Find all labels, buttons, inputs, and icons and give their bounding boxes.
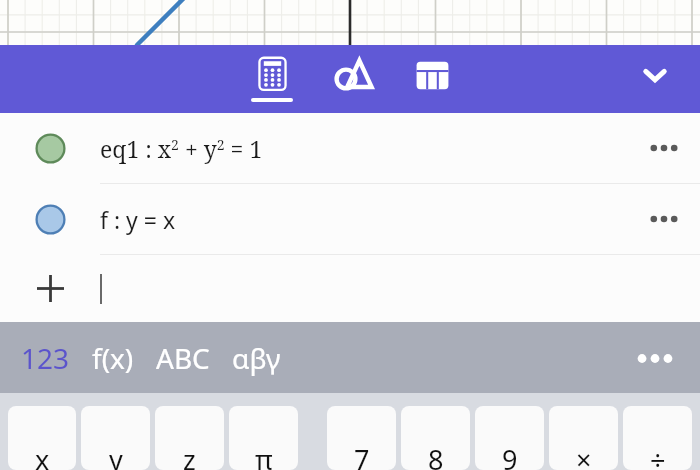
staticText: ABC xyxy=(156,339,210,377)
button[interactable]: Calculator xyxy=(233,45,311,113)
button[interactable]: 7 xyxy=(327,406,396,470)
staticText: 8 xyxy=(428,441,444,470)
button[interactable]: π xyxy=(229,406,298,470)
button[interactable]: Table xyxy=(397,45,467,113)
staticText: 9 xyxy=(502,441,518,470)
staticText: z xyxy=(183,441,196,470)
button[interactable]: ÷ xyxy=(623,406,692,470)
button[interactable]: eq1 : x2 + y2 = 1 xyxy=(0,113,700,183)
button[interactable]: × xyxy=(549,406,618,470)
button[interactable]: z xyxy=(155,406,224,470)
button[interactable]: x xyxy=(8,406,76,470)
button[interactable]: 8 xyxy=(401,406,470,470)
button[interactable]: 9 xyxy=(475,406,544,470)
staticText: × xyxy=(576,441,592,470)
button[interactable] xyxy=(0,255,700,322)
button[interactable]: More options xyxy=(628,184,700,254)
button[interactable]: ABC xyxy=(145,322,221,393)
staticText: ÷ xyxy=(650,441,666,470)
button[interactable]: Geometry xyxy=(319,45,389,113)
staticText: π xyxy=(255,441,273,470)
staticText: f(x) xyxy=(92,339,134,377)
staticText: 7 xyxy=(354,441,370,470)
button[interactable]: f(x) xyxy=(81,322,145,393)
button[interactable]: f : y = x xyxy=(0,184,700,254)
button[interactable]: More keyboard options xyxy=(628,331,682,385)
button[interactable]: 123 xyxy=(10,322,81,393)
staticText: 123 xyxy=(21,339,70,377)
button[interactable]: y xyxy=(81,406,150,470)
staticText: eq1 : x2 + y2 = 1 xyxy=(100,133,263,164)
button[interactable]: Collapse panel xyxy=(630,50,680,100)
staticText: f : y = x xyxy=(100,204,176,235)
staticText: y xyxy=(109,441,123,470)
button[interactable]: More options xyxy=(628,113,700,183)
staticText: αβγ xyxy=(232,339,281,377)
button[interactable]: αβγ xyxy=(221,322,292,393)
staticText: x xyxy=(35,441,50,470)
